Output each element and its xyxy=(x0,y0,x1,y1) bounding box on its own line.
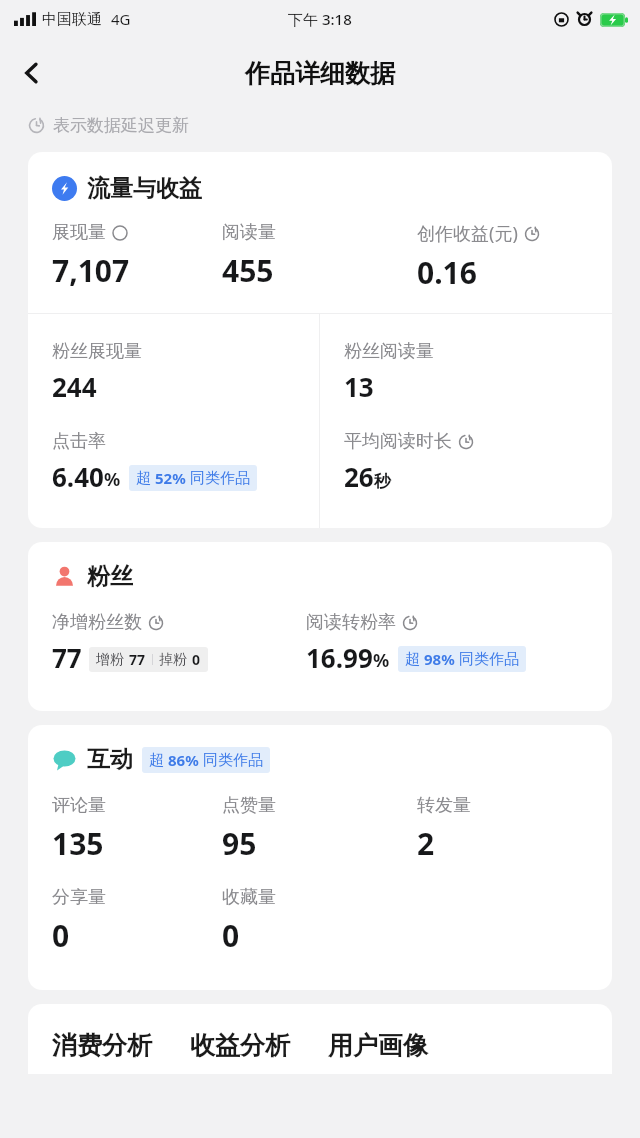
button[interactable]: 流量与收益 xyxy=(52,174,202,203)
staticText: 52% xyxy=(155,468,186,488)
staticText: 增粉 xyxy=(96,651,124,669)
staticText: 超 xyxy=(405,650,420,669)
staticText: 26 xyxy=(344,459,374,494)
staticText: 0 xyxy=(52,915,70,956)
button[interactable]: 消费分析 xyxy=(52,1030,152,1061)
button[interactable]: 收益分析 xyxy=(190,1030,290,1061)
staticText: 分享量 xyxy=(52,886,106,909)
staticText: 7,107 xyxy=(52,250,130,291)
staticText: 消费分析 xyxy=(52,1030,152,1061)
staticText: 流量与收益 xyxy=(87,174,202,203)
staticText: 收藏量 xyxy=(222,886,276,909)
staticText: 2 xyxy=(417,823,435,864)
staticText: 下午 3:18 xyxy=(288,9,352,29)
staticText: 244 xyxy=(52,369,97,404)
staticText: 转发量 xyxy=(417,794,471,817)
staticText: 秒 xyxy=(374,471,391,492)
staticText: 135 xyxy=(52,823,104,864)
staticText: 掉粉 xyxy=(159,651,187,669)
staticText: 粉丝 xyxy=(87,562,133,591)
staticText: 4G xyxy=(111,9,131,29)
staticText: 同类作品 xyxy=(190,469,250,488)
staticText: 77 xyxy=(52,640,82,675)
staticText: 0 xyxy=(222,915,240,956)
staticText: 86% xyxy=(168,750,199,770)
button[interactable]: 互动 xyxy=(52,745,270,774)
staticText: 阅读转粉率 xyxy=(306,611,396,634)
staticText: 点击率 xyxy=(52,430,106,453)
staticText: 同类作品 xyxy=(459,650,519,669)
staticText: 98% xyxy=(424,649,455,669)
staticText: 净增粉丝数 xyxy=(52,611,142,634)
staticText: 互动 xyxy=(87,745,133,774)
staticText: % xyxy=(104,467,121,492)
staticText: 16.99 xyxy=(306,640,373,675)
staticText: 创作收益(元) xyxy=(417,221,518,246)
staticText: 作品详细数据 xyxy=(245,58,395,89)
staticText: 收益分析 xyxy=(190,1030,290,1061)
staticText: 用户画像 xyxy=(328,1030,428,1061)
staticText: 455 xyxy=(222,250,274,291)
staticText: 展现量 xyxy=(52,221,106,244)
staticText: 77 xyxy=(129,650,146,669)
staticText: 中国联通 xyxy=(42,10,102,29)
staticText: 同类作品 xyxy=(203,751,263,770)
staticText: 超 xyxy=(149,751,164,770)
staticText: 13 xyxy=(344,369,374,404)
staticText: 95 xyxy=(222,823,257,864)
staticText: 粉丝阅读量 xyxy=(344,340,434,363)
staticText: 粉丝展现量 xyxy=(52,340,142,363)
button[interactable]: 用户画像 xyxy=(328,1030,428,1061)
staticText: 平均阅读时长 xyxy=(344,430,452,453)
button[interactable]: Back xyxy=(8,49,56,97)
staticText: 0 xyxy=(192,650,201,669)
staticText: 评论量 xyxy=(52,794,106,817)
staticText: % xyxy=(373,648,390,673)
staticText: 0.16 xyxy=(417,252,477,293)
staticText: 表示数据延迟更新 xyxy=(53,115,189,136)
staticText: 阅读量 xyxy=(222,221,276,244)
staticText: 超 xyxy=(136,469,151,488)
staticText: 6.40 xyxy=(52,459,104,494)
button[interactable]: 粉丝 xyxy=(52,562,133,591)
staticText: 点赞量 xyxy=(222,794,276,817)
